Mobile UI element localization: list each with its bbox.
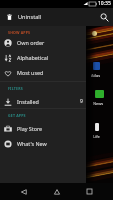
button[interactable]: Atlas xyxy=(93,62,111,70)
staticText: Own order xyxy=(17,39,45,46)
button[interactable]: Search xyxy=(95,8,113,26)
button[interactable]: Uninstall xyxy=(0,8,18,26)
staticText: Atlas xyxy=(91,73,101,78)
staticText: Most used xyxy=(17,69,44,76)
staticText: News xyxy=(93,101,104,106)
button[interactable]: App xyxy=(92,31,97,36)
staticText: Life xyxy=(93,134,100,139)
staticText: 10:35 xyxy=(98,0,111,7)
button[interactable]: What's New xyxy=(0,136,86,151)
staticText: 9 xyxy=(80,98,83,105)
staticText: What's New xyxy=(17,140,47,147)
button[interactable]: Alphabetical xyxy=(0,50,86,65)
staticText: Installed xyxy=(17,98,39,105)
staticText: Play Store xyxy=(17,125,43,132)
button[interactable]: Most used xyxy=(0,65,86,80)
staticText: SHOW APPS xyxy=(8,30,31,35)
button[interactable]: Own order xyxy=(0,35,86,50)
staticText: Alphabetical xyxy=(17,54,49,61)
button[interactable]: Back xyxy=(15,183,33,200)
button[interactable]: Life xyxy=(95,123,113,131)
staticText: Uninstall xyxy=(18,13,42,21)
button[interactable]: Home xyxy=(48,183,66,200)
staticText: FILTERS xyxy=(8,86,23,91)
button[interactable]: News xyxy=(95,90,113,98)
button[interactable]: Play Store xyxy=(0,121,86,136)
button[interactable]: Recents xyxy=(80,183,98,200)
button[interactable]: Installed xyxy=(0,94,86,109)
staticText: GET APPS xyxy=(8,113,26,118)
